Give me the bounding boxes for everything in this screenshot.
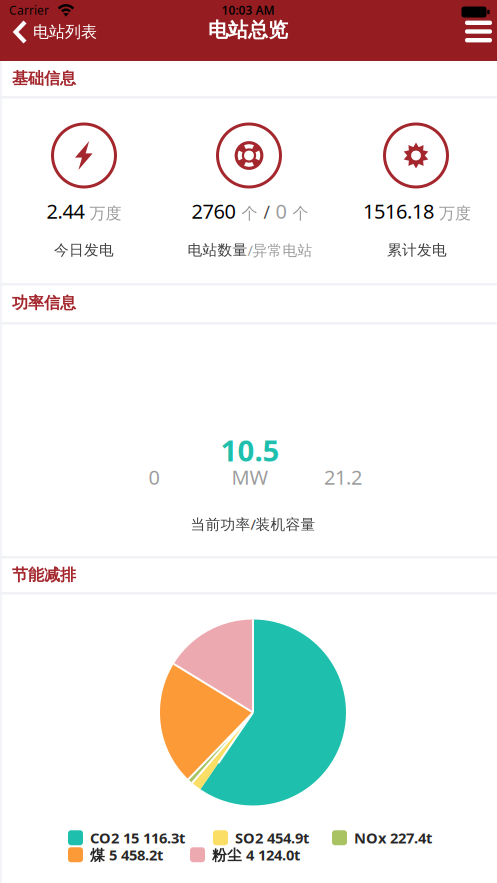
staticText: /异常电站 — [247, 240, 312, 260]
staticText: 功率信息 — [12, 293, 76, 313]
staticText: 累计发电 — [387, 241, 447, 259]
staticText: 基础信息 — [12, 69, 76, 88]
staticText: 煤 5 458.2t — [90, 845, 163, 864]
staticText: 万度 — [439, 204, 471, 223]
button[interactable]: 粉尘 4 124.0t — [190, 845, 300, 864]
staticText: MW — [231, 464, 268, 490]
staticText: 0 — [148, 464, 159, 490]
button[interactable]: CO2 15 116.3t — [68, 828, 185, 847]
staticText: 电站列表 — [33, 22, 97, 42]
staticText: 个 — [292, 204, 308, 223]
staticText: 个 — [241, 204, 257, 223]
staticText: 0 — [275, 198, 286, 224]
staticText: 万度 — [89, 204, 121, 223]
staticText: 今日发电 — [54, 241, 114, 259]
staticText: 电站总览 — [208, 18, 288, 42]
staticText: NOx 227.4t — [354, 828, 432, 847]
button[interactable]: 煤 5 458.2t — [68, 845, 163, 864]
staticText: 10:03 AM — [221, 2, 274, 18]
button[interactable]: SO2 454.9t — [213, 828, 309, 847]
button[interactable]: Menu — [465, 21, 492, 42]
button[interactable]: 电站列表 — [13, 20, 97, 44]
staticText: Carrier — [9, 2, 49, 18]
staticText: / — [263, 200, 269, 223]
button[interactable]: NOx 227.4t — [332, 828, 432, 847]
staticText: 10.5 — [220, 430, 279, 469]
staticText: 21.2 — [324, 464, 362, 490]
staticText: 2.44 — [46, 198, 84, 224]
staticText: 节能减排 — [12, 565, 76, 585]
staticText: CO2 15 116.3t — [90, 828, 185, 847]
staticText: 粉尘 4 124.0t — [212, 845, 300, 864]
staticText: 电站数量 — [187, 241, 247, 259]
staticText: 2760 — [191, 198, 235, 224]
staticText: 1516.18 — [363, 198, 434, 224]
staticText: SO2 454.9t — [235, 828, 309, 847]
staticText: 当前功率/装机容量 — [190, 514, 315, 534]
